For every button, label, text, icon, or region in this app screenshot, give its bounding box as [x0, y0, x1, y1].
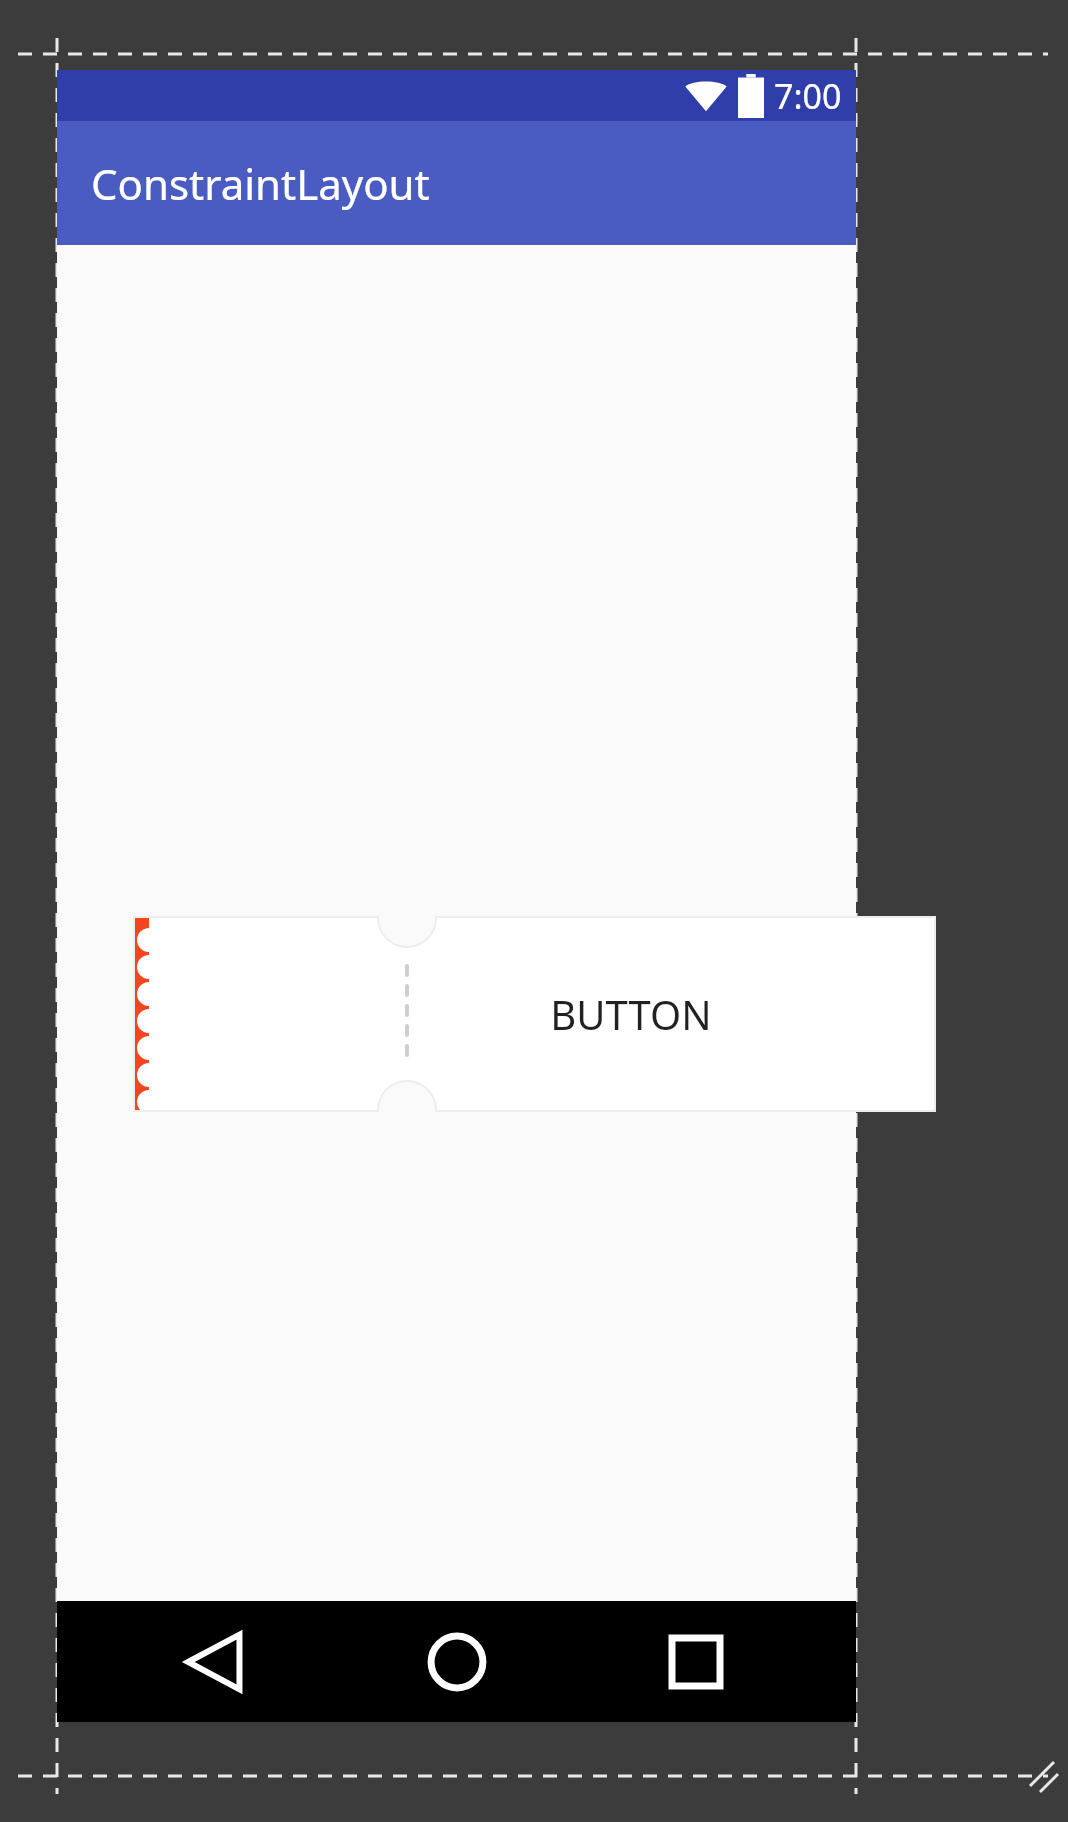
button[interactable]: Recent apps [648, 1614, 744, 1710]
staticText: 7:00 [774, 73, 842, 119]
button[interactable]: Home [409, 1614, 505, 1710]
button[interactable]: BUTTON [135, 918, 934, 1110]
staticText: BUTTON [550, 987, 712, 1041]
button[interactable]: Back [169, 1614, 265, 1710]
staticText: ConstraintLayout [91, 155, 430, 212]
button[interactable]: ConstraintLayout [57, 121, 856, 245]
